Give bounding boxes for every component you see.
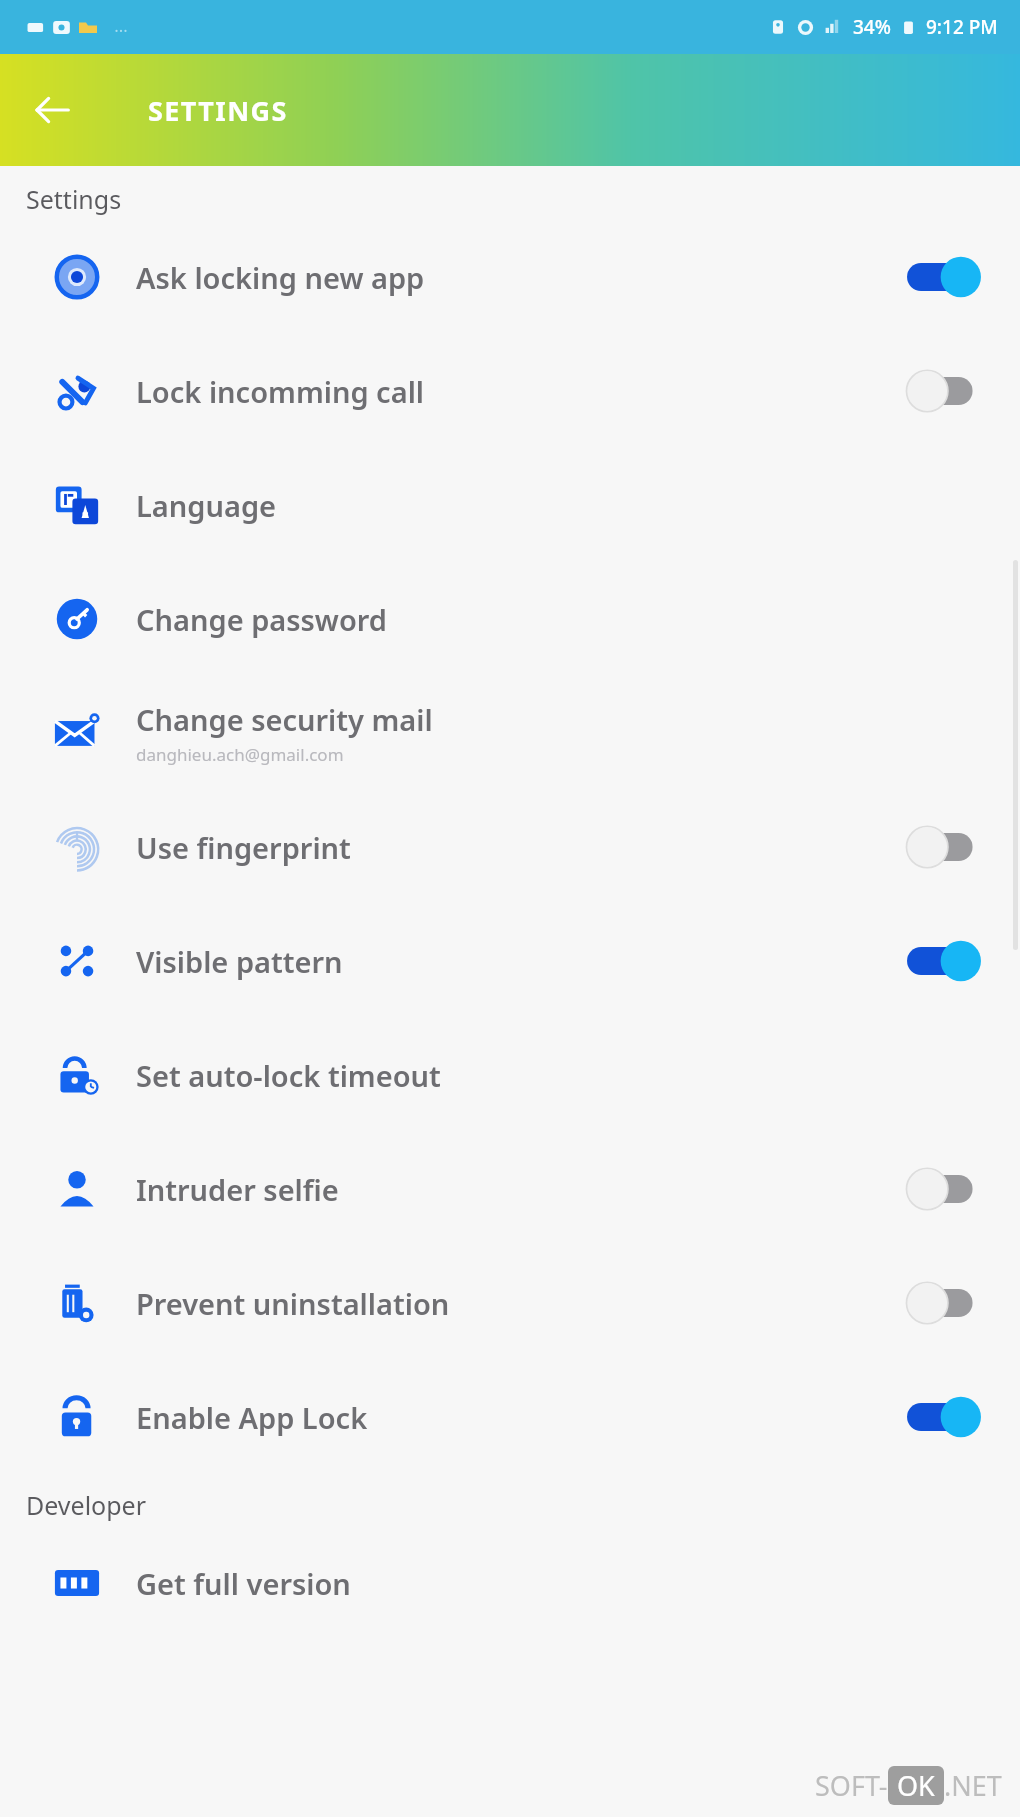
- staticText: 9:12 PM: [926, 14, 998, 40]
- staticText: .NET: [944, 1767, 1002, 1804]
- staticText: Change password: [136, 600, 387, 639]
- staticText: Use fingerprint: [136, 828, 351, 867]
- button[interactable]: Prevent uninstallation: [0, 1246, 1020, 1360]
- staticText: SETTINGS: [148, 92, 288, 129]
- button[interactable]: Change security mail: [0, 676, 1020, 790]
- staticText: Ask locking new app: [136, 258, 425, 297]
- staticText: Prevent uninstallation: [136, 1284, 450, 1323]
- button[interactable]: Language: [0, 448, 1020, 562]
- staticText: Enable App Lock: [136, 1398, 368, 1437]
- button[interactable]: Toggle off: [902, 363, 986, 419]
- staticText: Lock incomming call: [136, 372, 425, 411]
- staticText: Language: [136, 486, 277, 525]
- button[interactable]: Intruder selfie: [0, 1132, 1020, 1246]
- staticText: Change security mail: [136, 700, 433, 739]
- button[interactable]: Back: [20, 78, 84, 142]
- staticText: danghieu.ach@gmail.com: [136, 743, 344, 766]
- button[interactable]: Use fingerprint: [0, 790, 1020, 904]
- staticText: Visible pattern: [136, 942, 343, 981]
- button[interactable]: Lock incomming call: [0, 334, 1020, 448]
- staticText: OK: [897, 1767, 935, 1804]
- staticText: Intruder selfie: [136, 1170, 339, 1209]
- button[interactable]: Toggle on: [902, 933, 986, 989]
- button[interactable]: Set auto-lock timeout: [0, 1018, 1020, 1132]
- button[interactable]: Toggle off: [902, 1161, 986, 1217]
- button[interactable]: Get full version: [0, 1526, 1020, 1640]
- button[interactable]: Toggle off: [902, 1275, 986, 1331]
- button[interactable]: Toggle on: [902, 249, 986, 305]
- staticText: Settings: [26, 182, 1020, 216]
- staticText: Developer: [26, 1488, 1020, 1522]
- button[interactable]: Toggle off: [902, 819, 986, 875]
- staticText: Set auto-lock timeout: [136, 1056, 441, 1095]
- staticText: 34%: [853, 14, 891, 40]
- button[interactable]: Enable App Lock: [0, 1360, 1020, 1474]
- staticText: SOFT-: [815, 1767, 888, 1804]
- button[interactable]: Toggle on: [902, 1389, 986, 1445]
- staticText: Get full version: [136, 1564, 351, 1603]
- button[interactable]: Ask locking new app: [0, 220, 1020, 334]
- button[interactable]: Change password: [0, 562, 1020, 676]
- button[interactable]: Visible pattern: [0, 904, 1020, 1018]
